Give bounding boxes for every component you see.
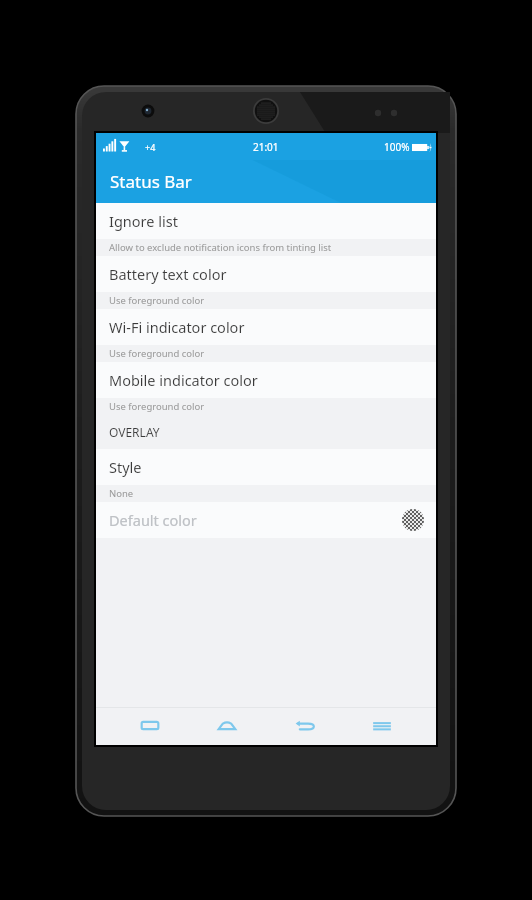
other: Pick default color xyxy=(402,509,424,531)
staticText: Style xyxy=(109,457,142,477)
staticText: 21:01 xyxy=(253,140,279,154)
button[interactable]: Battery text color xyxy=(96,256,436,292)
staticText: +4 xyxy=(145,141,156,153)
staticText: Ignore list xyxy=(109,211,178,231)
staticText: None xyxy=(109,487,134,500)
button[interactable]: Menu xyxy=(359,707,405,745)
staticText: Wi-Fi indicator color xyxy=(109,317,245,337)
staticText: Mobile indicator color xyxy=(109,370,258,390)
staticText: Use foreground color xyxy=(109,400,205,413)
button[interactable]: Recent apps xyxy=(127,707,173,745)
staticText: Default color xyxy=(109,510,197,530)
staticText: Use foreground color xyxy=(109,294,205,307)
button[interactable]: Wi-Fi indicator color xyxy=(96,309,436,345)
button[interactable]: Mobile indicator color xyxy=(96,362,436,398)
button[interactable]: Back xyxy=(282,707,328,745)
staticText: Use foreground color xyxy=(109,347,205,360)
staticText: Allow to exclude notification icons from… xyxy=(109,241,332,254)
staticText: 100% xyxy=(384,140,410,154)
button[interactable]: Ignore list xyxy=(96,203,436,239)
button[interactable]: Style xyxy=(96,449,436,485)
button[interactable]: Default color xyxy=(96,502,436,538)
staticText: Status Bar xyxy=(110,170,192,193)
staticText: OVERLAY xyxy=(109,424,160,440)
button[interactable]: Home xyxy=(204,707,250,745)
staticText: Battery text color xyxy=(109,264,227,284)
